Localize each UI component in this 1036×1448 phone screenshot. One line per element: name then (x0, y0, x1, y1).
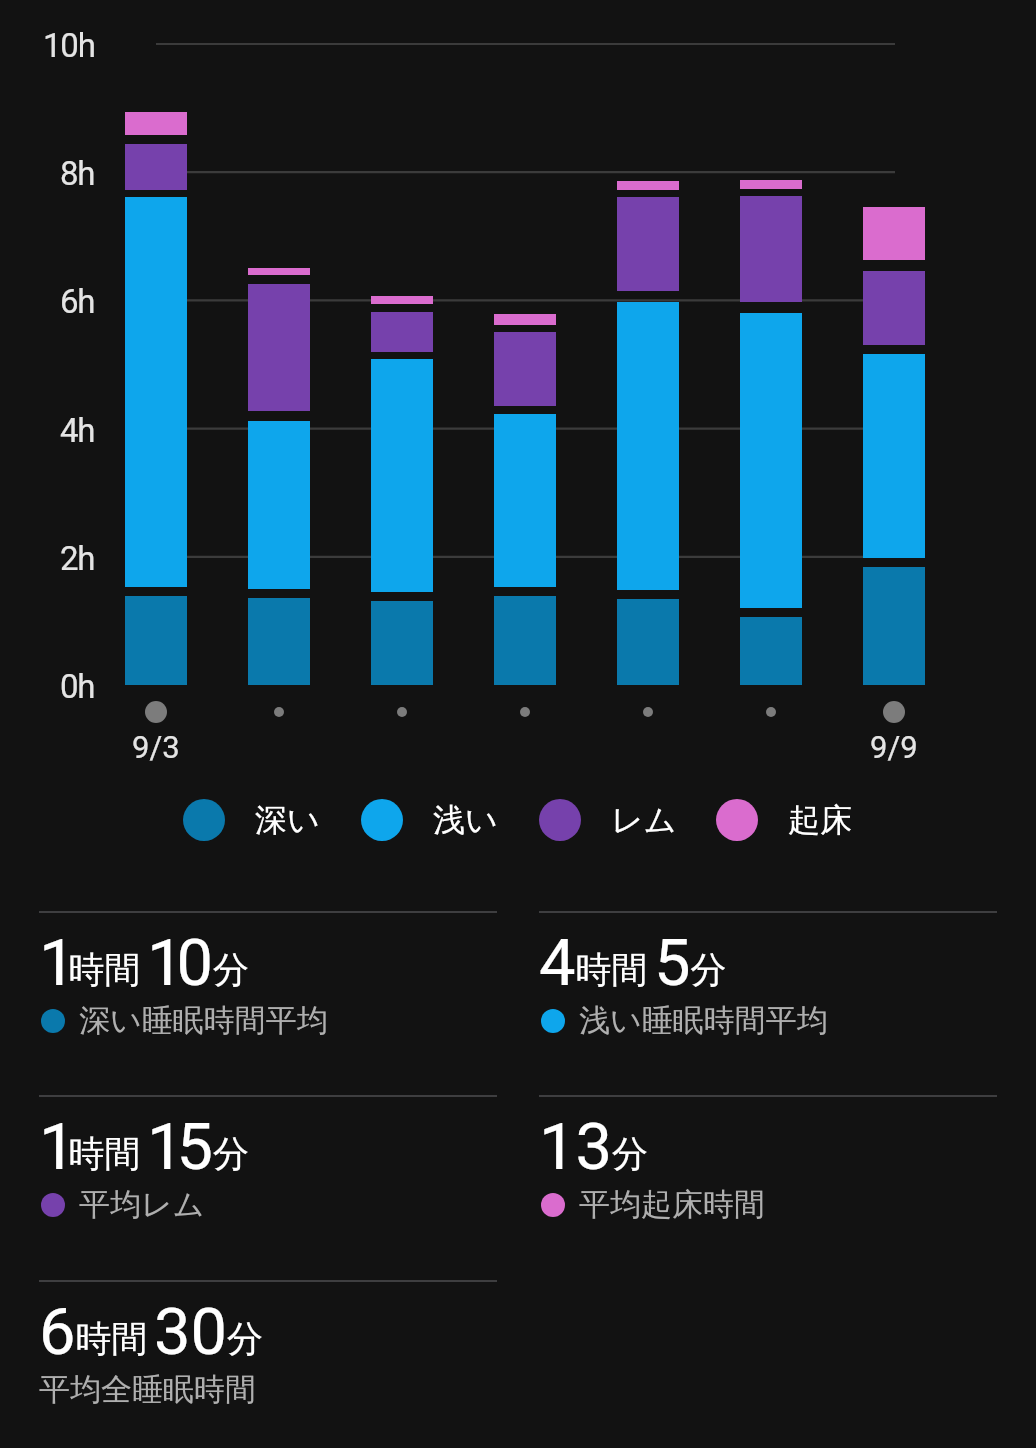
button[interactable]: 4時間 5分 (539, 911, 997, 1040)
button[interactable]: 睡眠 9/4 (248, 44, 310, 685)
staticText: 1時間 10分 (39, 925, 250, 1001)
staticText: 0h (60, 667, 95, 706)
staticText: 浅い睡眠時間平均 (579, 1001, 828, 1040)
button[interactable]: 睡眠 9/6 (494, 44, 556, 685)
staticText: 浅い (433, 800, 498, 840)
staticText: 平均起床時間 (579, 1185, 765, 1224)
staticText: 平均レム (79, 1185, 205, 1224)
button[interactable]: 1時間 10分 (39, 911, 497, 1040)
button[interactable]: レム (539, 799, 677, 841)
staticText: 8h (60, 154, 95, 193)
staticText: 10h (43, 26, 95, 65)
staticText: 6時間 30分 (39, 1294, 264, 1370)
staticText: 平均全睡眠時間 (39, 1370, 256, 1409)
button[interactable]: 浅い (361, 799, 498, 841)
staticText: 深い睡眠時間平均 (79, 1001, 328, 1040)
button[interactable]: 13分 (539, 1095, 997, 1224)
staticText: 1時間 15分 (39, 1109, 250, 1185)
button[interactable]: 1時間 15分 (39, 1095, 497, 1224)
staticText: 深い (255, 800, 320, 840)
button[interactable]: 6時間 30分 (39, 1280, 497, 1409)
staticText: 9/3 (132, 729, 180, 765)
staticText: 13分 (539, 1109, 649, 1185)
staticText: 4時間 5分 (539, 925, 727, 1001)
staticText: 9/9 (870, 729, 918, 765)
button[interactable]: 睡眠 9/5 (371, 44, 433, 685)
staticText: レム (611, 800, 677, 840)
staticText: 2h (60, 539, 95, 578)
staticText: 4h (60, 411, 95, 450)
staticText: 6h (60, 282, 95, 321)
button[interactable]: 起床 (716, 799, 852, 841)
button[interactable]: 睡眠 9/3 (125, 44, 187, 685)
button[interactable]: 睡眠 9/8 (740, 44, 802, 685)
button[interactable]: 睡眠 9/7 (617, 44, 679, 685)
staticText: 起床 (788, 800, 852, 840)
button[interactable]: 睡眠 9/9 (863, 44, 925, 685)
button[interactable]: 深い (183, 799, 320, 841)
